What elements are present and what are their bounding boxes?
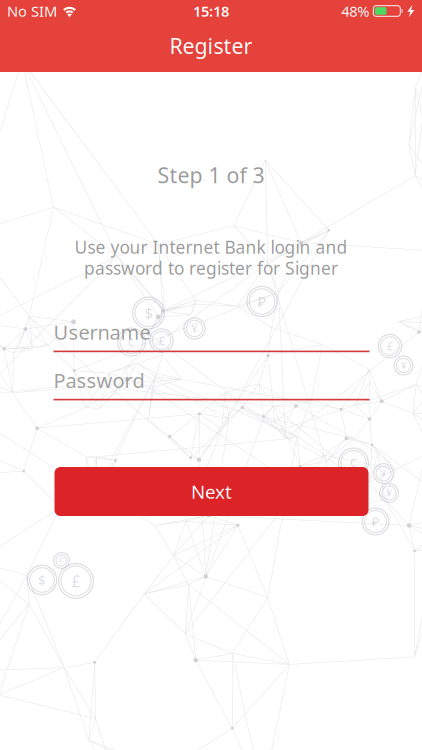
button[interactable]: Next — [54, 467, 368, 516]
staticText: Username — [53, 319, 150, 345]
staticText: No SIM — [7, 1, 57, 21]
staticText: £ — [71, 570, 80, 592]
staticText: ¢ — [349, 453, 357, 473]
staticText: ¥ — [386, 487, 391, 499]
staticText: Use your Internet Bank login and — [74, 235, 347, 258]
staticText: ₽ — [257, 292, 266, 311]
staticText: ¥ — [191, 321, 197, 336]
staticText: password to register for Signer — [84, 256, 338, 279]
staticText: ¥ — [381, 467, 386, 480]
staticText: ₽ — [371, 513, 379, 530]
staticText: Register — [169, 32, 252, 60]
staticText: ¢ — [59, 555, 64, 566]
staticText: $ — [144, 303, 152, 323]
staticText: £ — [387, 339, 393, 353]
staticText: Next — [191, 479, 232, 504]
staticText: 15:18 — [193, 1, 229, 21]
staticText: $ — [38, 571, 46, 589]
staticText: 48% — [341, 1, 369, 21]
staticText: ¥ — [401, 359, 406, 372]
staticText: ¢ — [127, 333, 135, 351]
staticText: Password — [53, 367, 144, 393]
staticText: Step 1 of 3 — [157, 161, 264, 189]
staticText: £ — [158, 333, 164, 348]
